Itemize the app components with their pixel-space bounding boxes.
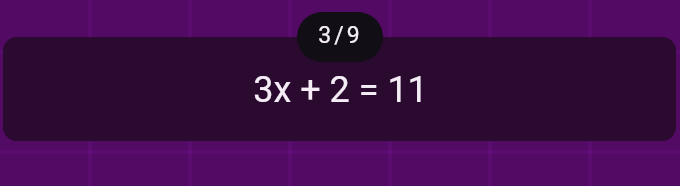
button[interactable]: 3/9: [297, 12, 383, 62]
staticText: 3/9: [318, 22, 363, 49]
button[interactable]: 3x + 2 = 11: [3, 37, 676, 141]
staticText: 3x + 2 = 11: [253, 69, 428, 111]
